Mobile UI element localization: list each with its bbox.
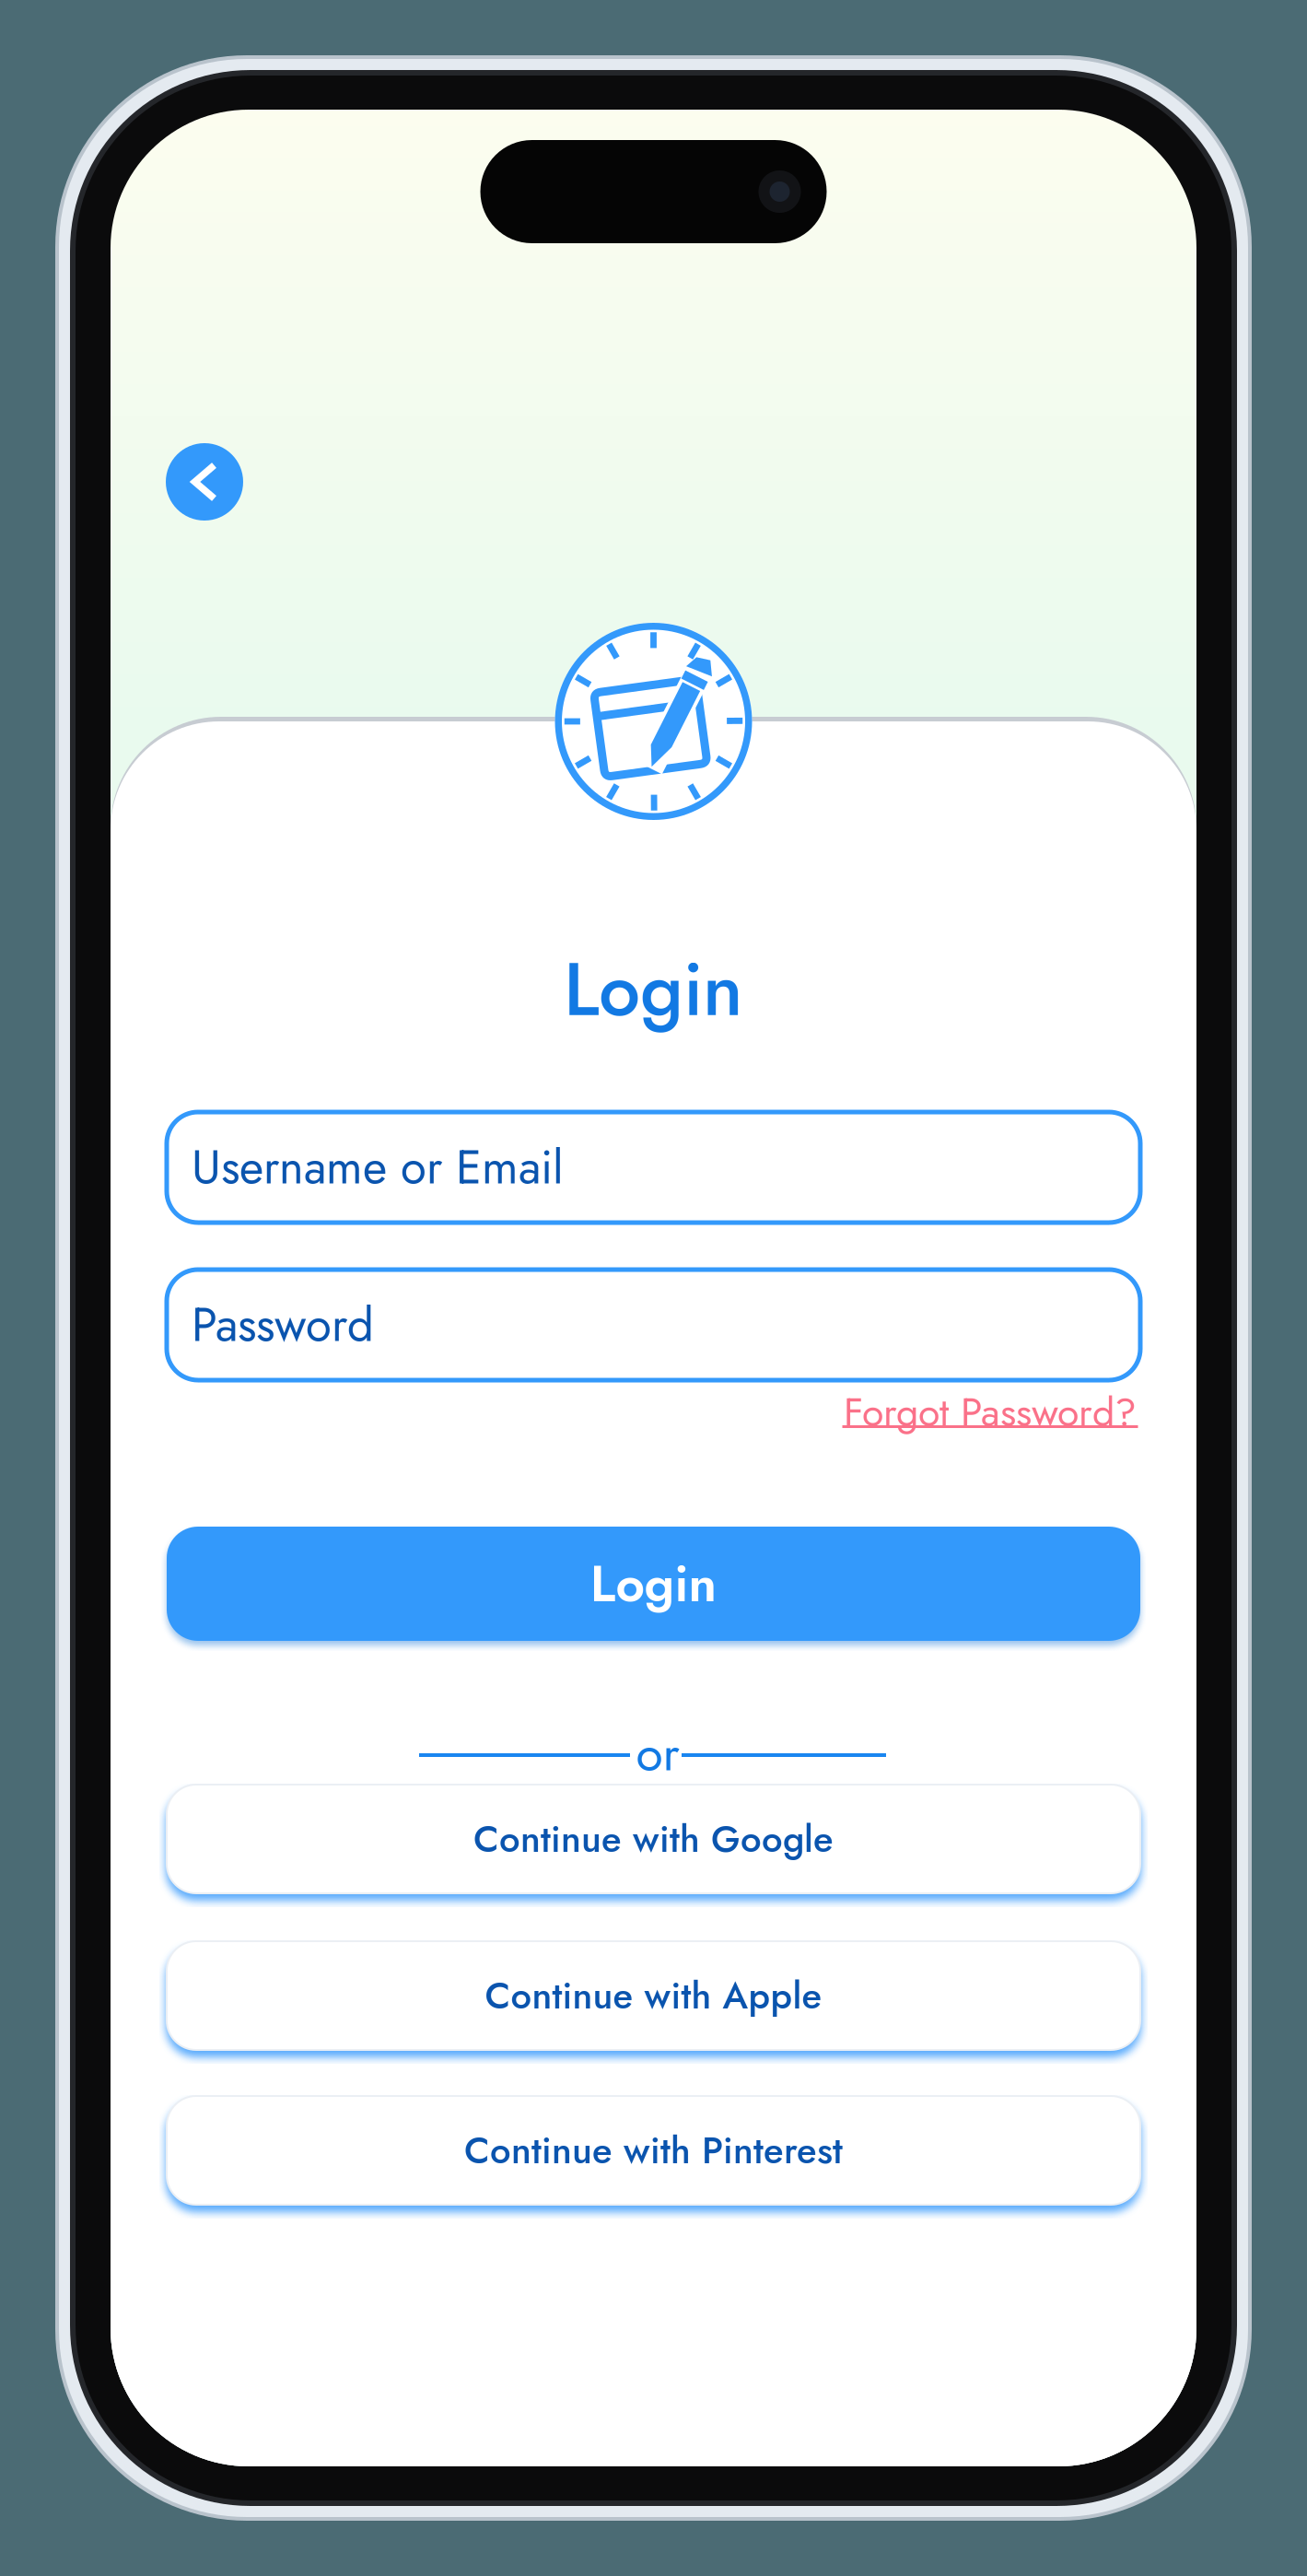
button[interactable]: Back — [166, 443, 243, 521]
button[interactable]: Login — [167, 1527, 1140, 1641]
staticText: or — [636, 1718, 679, 1789]
staticText: Continue with Pinterest — [464, 2124, 843, 2177]
staticText: Continue with Google — [473, 1812, 834, 1866]
staticText: Continue with Apple — [485, 1969, 822, 2022]
staticText: Login — [564, 936, 743, 1043]
staticText: Login — [590, 1547, 717, 1620]
button[interactable]: Password — [167, 1270, 1140, 1380]
button[interactable]: Continue with Pinterest — [167, 2096, 1140, 2205]
staticText: Forgot Password? — [844, 1384, 1137, 1441]
button[interactable]: Forgot Password? — [842, 1387, 1138, 1438]
button[interactable]: Continue with Apple — [167, 1941, 1140, 2050]
staticText: Username or Email — [192, 1134, 564, 1201]
button[interactable]: Continue with Google — [167, 1785, 1140, 1893]
staticText: Password — [192, 1291, 374, 1359]
button[interactable]: Username or Email — [167, 1112, 1140, 1223]
